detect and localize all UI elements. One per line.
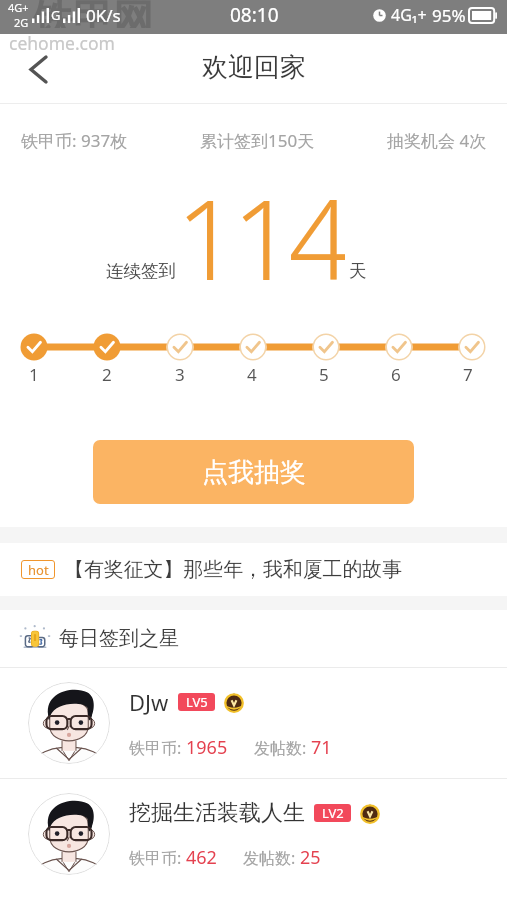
staticText: G (51, 6, 61, 24)
staticText: 71 (311, 735, 332, 760)
staticText: 1 (29, 363, 39, 386)
button[interactable]: hot (0, 543, 507, 596)
staticText: 铁甲币: (129, 737, 186, 759)
staticText: 3 (175, 363, 185, 386)
button[interactable]: Back (14, 45, 62, 93)
staticText: 114 (176, 162, 345, 294)
staticText: 95% (432, 4, 466, 27)
button[interactable]: 挖掘生活装载人生 (0, 779, 507, 889)
staticText: 7 (463, 363, 473, 386)
staticText: 0K/s (86, 4, 121, 27)
staticText: 462 (186, 845, 217, 870)
staticText: 4 (247, 363, 257, 386)
staticText: hot (28, 561, 49, 579)
button[interactable]: 点我抽奖 (93, 440, 414, 504)
staticText: 铁甲网 (33, 0, 153, 28)
staticText: 25 (300, 845, 321, 870)
staticText: 点我抽奖 (202, 456, 306, 489)
staticText: 2G (14, 15, 29, 30)
staticText: 发帖数: (243, 847, 300, 869)
staticText: 天 (349, 260, 367, 282)
staticText: 铁甲币: (129, 847, 186, 869)
staticText: 每日签到之星 (59, 626, 179, 651)
staticText: 连续签到 (106, 260, 176, 282)
staticText: 5 (319, 363, 329, 386)
staticText: DJw (129, 687, 169, 717)
staticText: 铁甲币: 937枚 (21, 129, 128, 152)
staticText: 08:10 (230, 2, 279, 28)
staticText: 1965 (186, 735, 228, 760)
staticText: 4G+ (8, 0, 29, 15)
staticText: LV5 (186, 693, 208, 711)
staticText: 累计签到150天 (200, 129, 315, 152)
staticText: 2 (102, 363, 112, 386)
staticText: 挖掘生活装载人生 (129, 799, 305, 827)
button[interactable]: DJw (0, 668, 507, 778)
staticText: LV2 (322, 804, 344, 822)
staticText: 发帖数: (254, 737, 311, 759)
staticText: 6 (391, 363, 401, 386)
staticText: cehome.com (9, 31, 115, 55)
staticText: 欢迎回家 (202, 51, 306, 84)
staticText: 抽奖机会 4次 (387, 129, 487, 152)
staticText: 【有奖征文】那些年，我和厦工的故事 (64, 557, 403, 582)
staticText: 4G₁+ (391, 4, 427, 26)
